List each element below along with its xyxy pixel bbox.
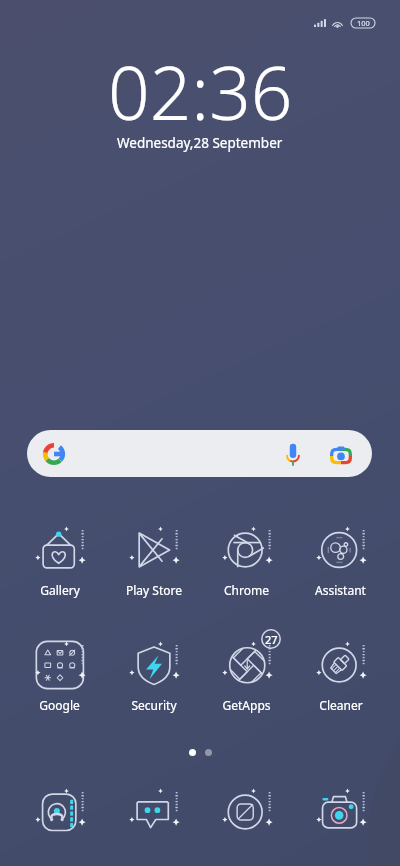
- staticText: Assistant: [315, 582, 366, 598]
- button[interactable]: Google: [13, 639, 106, 713]
- staticText: GetApps: [222, 697, 271, 713]
- button[interactable]: Security: [107, 639, 200, 713]
- button[interactable]: Browser: [200, 786, 293, 838]
- button[interactable]: Contacts: [13, 786, 106, 838]
- staticText: 100: [357, 18, 370, 28]
- staticText: Cleaner: [319, 697, 363, 713]
- button[interactable]: Camera: [294, 786, 387, 838]
- button[interactable]: GetApps: [200, 639, 293, 713]
- button[interactable]: Cleaner: [294, 639, 387, 713]
- button[interactable]: Chrome: [200, 524, 293, 598]
- staticText: Chrome: [224, 582, 269, 598]
- staticText: Google: [39, 697, 80, 713]
- staticText: 27: [265, 632, 278, 647]
- staticText: Gallery: [40, 582, 80, 598]
- button[interactable]: Assistant: [294, 524, 387, 598]
- staticText: Play Store: [126, 582, 182, 598]
- button[interactable]: Google Search: [27, 430, 372, 477]
- button[interactable]: Play Store: [107, 524, 200, 598]
- other: Google Search: [41, 441, 67, 467]
- button[interactable]: Messages: [107, 786, 200, 838]
- button[interactable]: Voice search: [280, 441, 306, 467]
- button[interactable]: Gallery: [13, 524, 106, 598]
- staticText: 02:36: [108, 42, 293, 141]
- button[interactable]: Google Lens: [328, 441, 354, 467]
- staticText: Wednesday,28 September: [117, 134, 283, 152]
- staticText: Security: [131, 697, 177, 713]
